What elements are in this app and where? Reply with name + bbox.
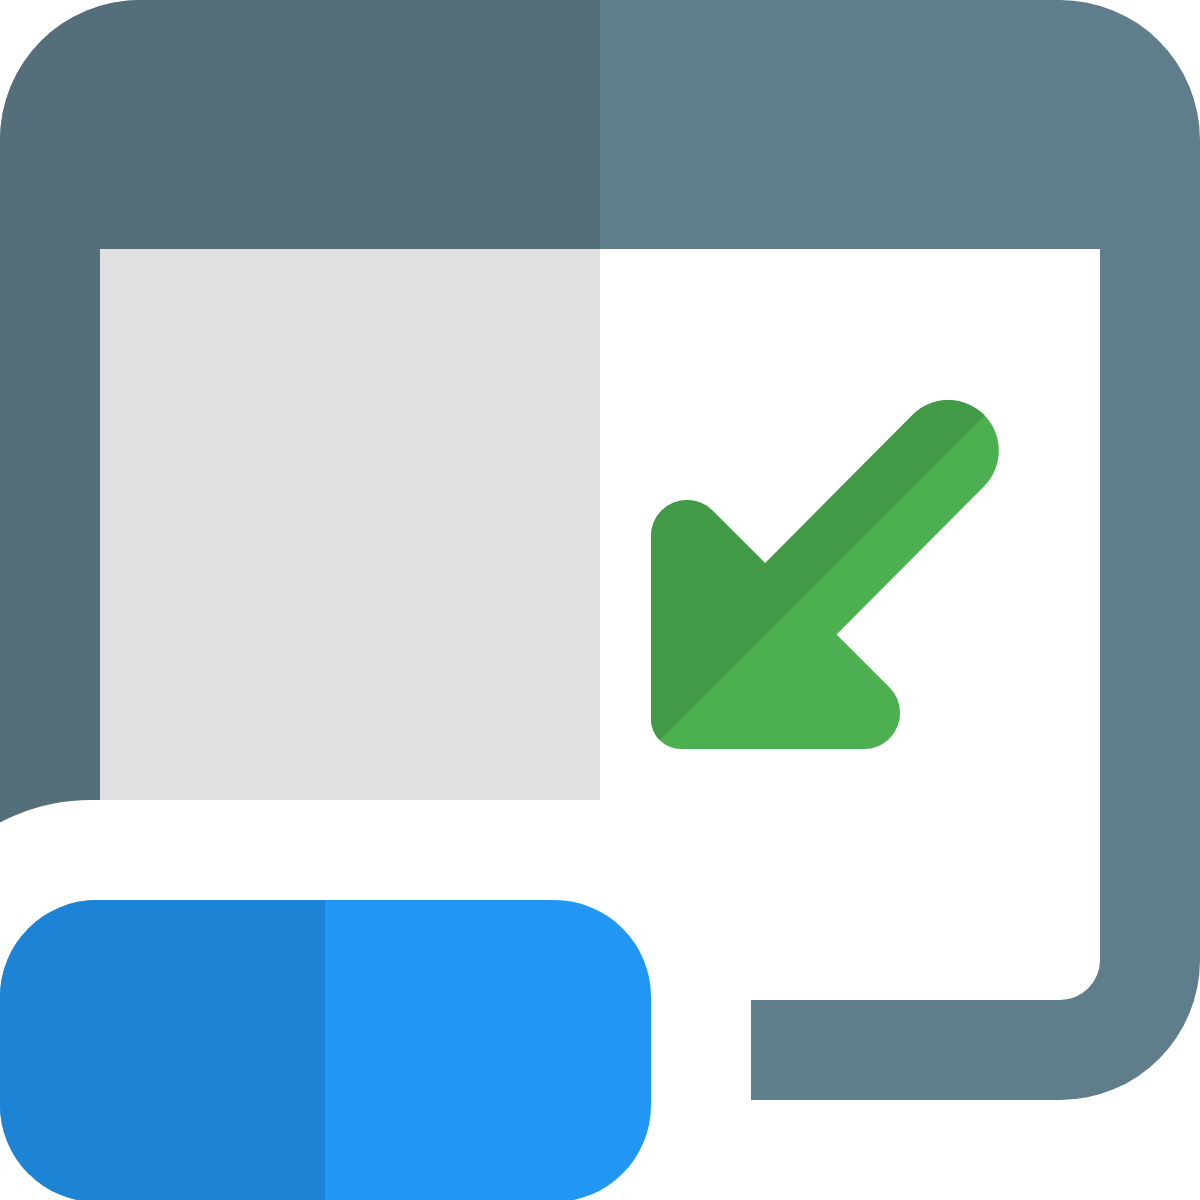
button[interactable]: Restore down window <box>0 0 1200 1200</box>
